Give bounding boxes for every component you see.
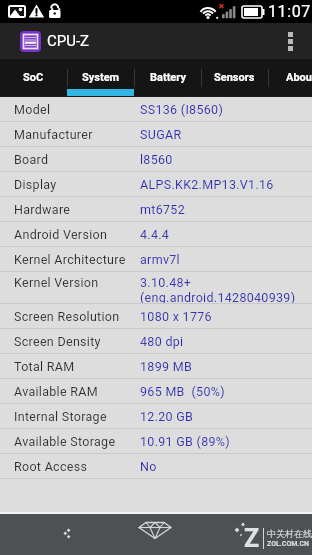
button[interactable]: Internal Storage (0, 404, 312, 428)
staticText: About (286, 71, 312, 84)
staticText: Screen Density (14, 334, 101, 349)
button[interactable]: Board (0, 147, 312, 171)
staticText: 11:07 (268, 2, 311, 21)
button[interactable] (268, 23, 312, 59)
staticText: CPU-Z (47, 32, 90, 50)
staticText: 4.4.4 (140, 227, 170, 242)
staticText: mt6752 (140, 202, 185, 217)
button[interactable]: Battery (134, 59, 201, 96)
staticText: Board (14, 152, 49, 167)
button[interactable]: Hardware (0, 197, 312, 221)
button[interactable]: Root Access (0, 454, 312, 478)
staticText: Hardware (14, 202, 71, 217)
staticText: 10.91 GB (89%) (140, 434, 230, 449)
button[interactable] (52, 519, 84, 551)
staticText: Kernel Architecture (14, 252, 126, 267)
staticText: Total RAM (14, 359, 75, 374)
staticText: Battery (150, 71, 186, 84)
button[interactable]: Screen Density (0, 329, 312, 353)
button[interactable]: About (268, 59, 312, 96)
staticText: Screen Resolution (14, 309, 120, 324)
staticText: Root Access (14, 459, 88, 474)
button[interactable]: Model (0, 97, 312, 121)
staticText: armv7l (140, 252, 180, 267)
staticText: SUGAR (140, 127, 182, 142)
staticText: Manufacturer (14, 127, 93, 142)
staticText: Model (14, 102, 51, 117)
button[interactable]: Available RAM (0, 379, 312, 403)
staticText: SoC (23, 71, 44, 84)
staticText: ALPS.KK2.MP13.V1.16 (140, 177, 274, 192)
button[interactable]: Kernel Version (0, 272, 312, 303)
button[interactable]: SoC (0, 59, 67, 96)
staticText: 965 MB (50%) (140, 384, 225, 399)
button[interactable]: Manufacturer (0, 122, 312, 146)
staticText: l8560 (140, 152, 173, 167)
staticText: Android Version (14, 227, 108, 242)
staticText: Available Storage (14, 434, 116, 449)
staticText: 中关村在线 (267, 528, 312, 539)
button[interactable]: Screen Resolution (0, 304, 312, 328)
staticText: Internal Storage (14, 409, 107, 424)
button[interactable]: System (67, 59, 134, 96)
staticText: ZOL.COM.CN (267, 540, 309, 548)
button[interactable]: Kernel Architecture (0, 247, 312, 271)
staticText: No (140, 459, 157, 474)
button[interactable]: Display (0, 172, 312, 196)
staticText: Kernel Version (14, 275, 99, 290)
staticText: System (82, 71, 120, 84)
staticText: 12.20 GB (140, 409, 194, 424)
staticText: 1080 x 1776 (140, 309, 212, 324)
button[interactable] (138, 518, 172, 552)
staticText: 480 dpi (140, 334, 184, 349)
staticText: 1899 MB (140, 359, 193, 374)
button[interactable]: Sensors (201, 59, 268, 96)
staticText: Sensors (214, 71, 255, 84)
staticText: SS136 (I8560) (140, 102, 224, 117)
button[interactable]: Available Storage (0, 429, 312, 453)
button[interactable]: Android Version (0, 222, 312, 246)
button[interactable]: Total RAM (0, 354, 312, 378)
staticText: Z (244, 524, 260, 553)
staticText: 3.10.48+ (140, 275, 192, 290)
staticText: Available RAM (14, 384, 98, 399)
staticText: (eng.android.1428040939) (140, 290, 296, 303)
staticText: Display (14, 177, 57, 192)
